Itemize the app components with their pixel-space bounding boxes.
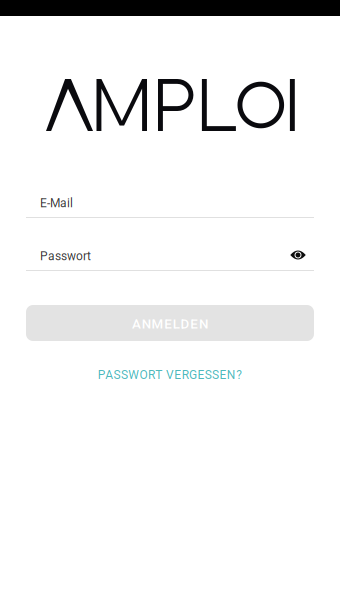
staticText: E-Mail [40, 196, 73, 210]
staticText: PASSWORT VERGESSEN? [98, 368, 242, 382]
button[interactable]: ANMELDEN [26, 305, 314, 341]
staticText: ANMELDEN [132, 316, 208, 332]
staticText: Passwort [40, 249, 91, 263]
button[interactable]: PASSWORT VERGESSEN? [26, 364, 314, 386]
button[interactable]: Show password [282, 243, 314, 267]
